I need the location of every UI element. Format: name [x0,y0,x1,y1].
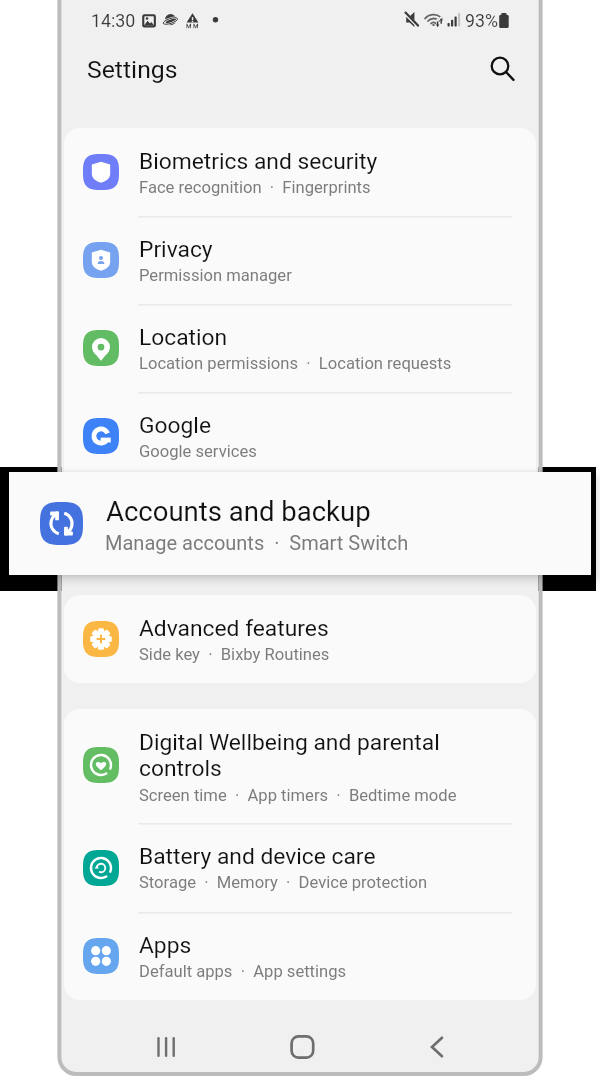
button[interactable]: Battery and device care [64,823,536,912]
staticText: Settings [87,55,178,84]
staticText: Screen time · App timers · Bedtime mode [139,786,457,805]
staticText: Battery and device care [139,843,376,870]
button[interactable]: Accounts and backup [9,472,591,575]
staticText: Permission manager [139,266,292,285]
button[interactable]: Apps [64,912,536,1000]
button[interactable]: Advanced features [64,595,536,683]
staticText: Manage accounts · Smart Switch [139,530,391,549]
button[interactable]: Back [391,1013,483,1077]
button[interactable]: Digital Wellbeing and parental [64,709,536,823]
button[interactable]: Google [64,392,536,480]
button[interactable]: Privacy [64,216,536,304]
staticText: Privacy [139,236,213,263]
button[interactable]: Accounts and backup [64,480,536,568]
staticText: Face recognition · Fingerprints [139,178,371,197]
staticText: controls [139,755,222,782]
staticText: Accounts and backup [139,500,359,527]
staticText: Accounts and backup [106,495,371,527]
button[interactable]: Biometrics and security [64,128,536,216]
staticText: Location permissions · Location requests [139,354,452,373]
staticText: Digital Wellbeing and parental [139,729,440,756]
staticText: Storage · Memory · Device protection [139,873,428,892]
button[interactable]: Home [256,1013,348,1077]
staticText: Biometrics and security [139,148,378,175]
staticText: Advanced features [139,615,329,642]
staticText: Manage accounts · Smart Switch [105,531,409,554]
button[interactable]: Recent apps [120,1013,212,1077]
button[interactable]: Location [64,304,536,392]
staticText: Google services [139,442,257,461]
staticText: Default apps · App settings [139,962,347,981]
staticText: 14:30 [91,10,136,31]
staticText: Google [139,412,211,439]
staticText: Side key · Bixby Routines [139,645,330,664]
staticText: M M [186,22,199,29]
staticText: Location [139,324,228,351]
staticText: Apps [139,932,192,959]
button[interactable]: Search [472,38,528,94]
staticText: 93% [465,10,499,31]
